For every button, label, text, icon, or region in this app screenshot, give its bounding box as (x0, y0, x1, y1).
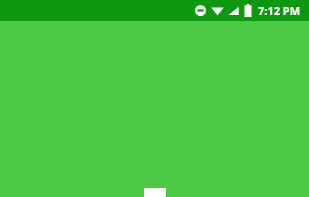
other: Battery (244, 4, 252, 17)
staticText: 7:12 PM (258, 3, 301, 18)
other: Cellular signal (228, 5, 239, 16)
other: Wi-Fi (211, 5, 224, 16)
other: Do not disturb (195, 5, 206, 16)
